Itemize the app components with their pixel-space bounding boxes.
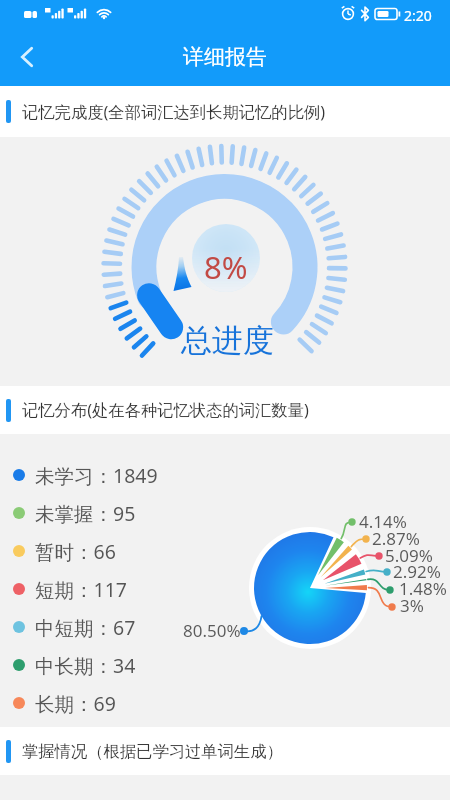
staticText: 总进度	[181, 321, 274, 360]
staticText: 短期：117	[35, 576, 127, 603]
button[interactable]: Back	[0, 30, 54, 84]
staticText: 4.14%	[359, 510, 407, 533]
staticText: 2.87%	[372, 527, 420, 550]
staticText: 80.50%	[183, 619, 241, 642]
staticText: 未掌握：95	[35, 500, 136, 527]
staticText: 记忆分布(处在各种记忆状态的词汇数量)	[22, 399, 309, 421]
staticText: 3%	[400, 594, 424, 617]
staticText: 2:20	[404, 6, 432, 25]
staticText: 记忆完成度(全部词汇达到长期记忆的比例)	[22, 101, 326, 123]
staticText: 2.92%	[393, 560, 441, 583]
staticText: 1.48%	[399, 577, 447, 600]
staticText: 掌握情况（根据已学习过单词生成）	[22, 741, 283, 762]
staticText: 中长期：34	[35, 652, 136, 679]
staticText: 8%	[204, 246, 248, 288]
staticText: 5.09%	[385, 544, 433, 567]
staticText: 未学习：1849	[35, 462, 158, 489]
staticText: 中短期：67	[35, 614, 136, 641]
staticText: 详细报告	[183, 44, 267, 70]
staticText: 长期：69	[35, 690, 116, 717]
staticText: 暂时：66	[35, 538, 116, 565]
